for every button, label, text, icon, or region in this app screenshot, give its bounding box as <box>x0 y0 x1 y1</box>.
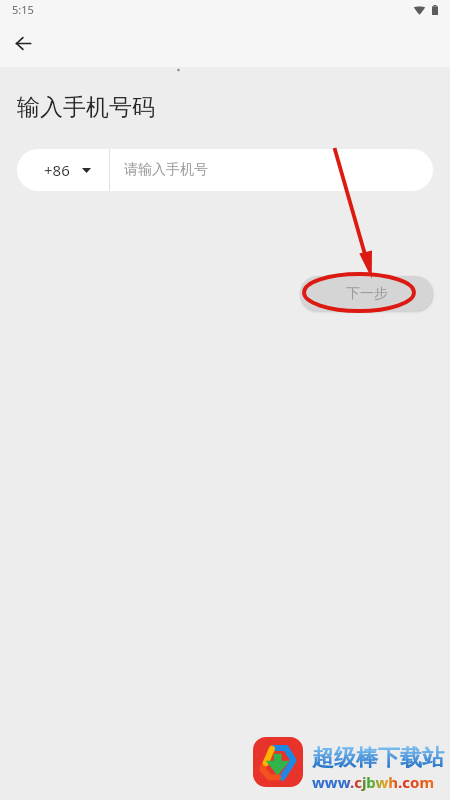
button[interactable]: Select country code <box>17 149 109 191</box>
staticText: 下一步 <box>346 285 388 303</box>
button[interactable]: 请输入手机号 <box>110 149 433 191</box>
staticText: 输入手机号码 <box>17 93 155 122</box>
staticText: 5:15 <box>12 2 34 17</box>
button[interactable]: 下一步 <box>300 276 433 311</box>
staticText: 超级棒下载站 <box>312 744 444 772</box>
button[interactable]: Back <box>3 23 43 63</box>
staticText: www.cjbwh.com <box>312 772 435 792</box>
staticText: 请输入手机号 <box>124 161 208 179</box>
staticText: +86 <box>44 160 70 180</box>
